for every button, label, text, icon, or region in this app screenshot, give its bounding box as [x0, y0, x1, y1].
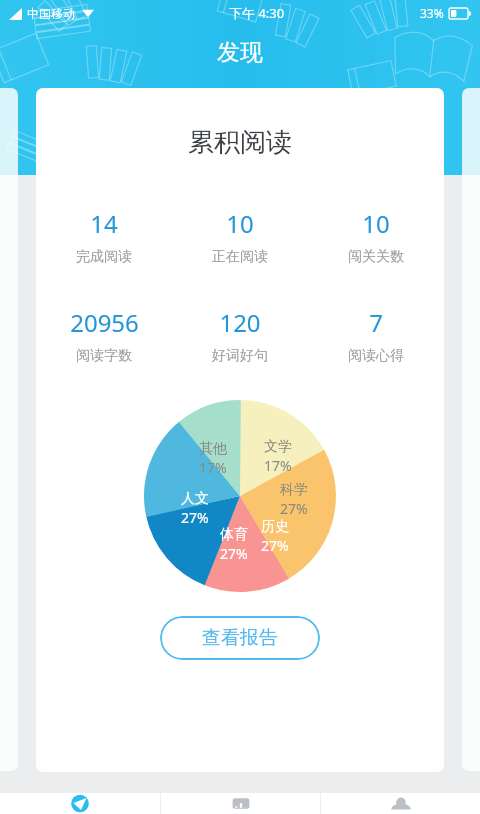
- staticText: 科学: [280, 481, 308, 499]
- staticText: 文学: [264, 438, 292, 456]
- staticText: 闯关关数: [348, 248, 404, 266]
- staticText: 发现: [217, 38, 263, 67]
- staticText: 27%: [181, 508, 209, 527]
- staticText: 历史: [261, 518, 289, 536]
- staticText: 27%: [280, 499, 308, 518]
- staticText: 7: [369, 306, 383, 339]
- staticText: 好词好句: [212, 347, 268, 365]
- button[interactable]: Profile: [321, 793, 480, 814]
- button[interactable]: 查看报告: [160, 616, 320, 660]
- staticText: 人文: [181, 490, 209, 508]
- staticText: 17%: [264, 456, 292, 475]
- staticText: 20956: [70, 306, 139, 339]
- staticText: 其他: [199, 440, 227, 458]
- staticText: 阅读心得: [348, 347, 404, 365]
- staticText: 27%: [220, 544, 248, 563]
- staticText: 阅读字数: [76, 347, 132, 365]
- staticText: 下午 4:30: [229, 4, 285, 22]
- staticText: 累积阅读: [188, 126, 292, 159]
- staticText: 10: [226, 207, 254, 240]
- staticText: 体育: [220, 526, 248, 544]
- staticText: 查看报告: [202, 626, 278, 650]
- button[interactable]: Statistics: [161, 793, 320, 814]
- staticText: 10: [362, 207, 390, 240]
- staticText: 正在阅读: [212, 248, 268, 266]
- staticText: 中国移动: [27, 6, 75, 21]
- staticText: 27%: [261, 536, 289, 555]
- staticText: 17%: [199, 458, 227, 477]
- staticText: 14: [90, 207, 118, 240]
- staticText: 33%: [420, 5, 444, 21]
- staticText: 120: [219, 306, 261, 339]
- staticText: 完成阅读: [76, 248, 132, 266]
- button[interactable]: Discover: [0, 793, 160, 814]
